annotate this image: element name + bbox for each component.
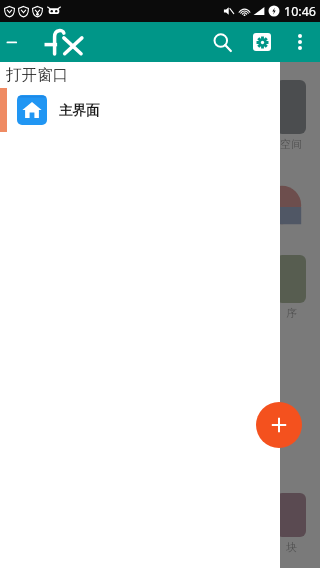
button[interactable]: Settings: [242, 22, 282, 62]
button[interactable]: Search: [202, 22, 242, 62]
button[interactable]: Add: [256, 402, 302, 448]
button[interactable]: 主界面: [0, 88, 280, 132]
staticText: 主界面: [59, 102, 100, 119]
staticText: 10:46: [284, 3, 316, 20]
staticText: 块: [286, 540, 297, 554]
staticText: 打开窗口: [6, 65, 68, 85]
staticText: 序: [286, 306, 297, 320]
staticText: 空间: [280, 137, 302, 151]
button[interactable]: More options: [282, 24, 318, 60]
button[interactable]: Navigation menu: [0, 25, 34, 59]
